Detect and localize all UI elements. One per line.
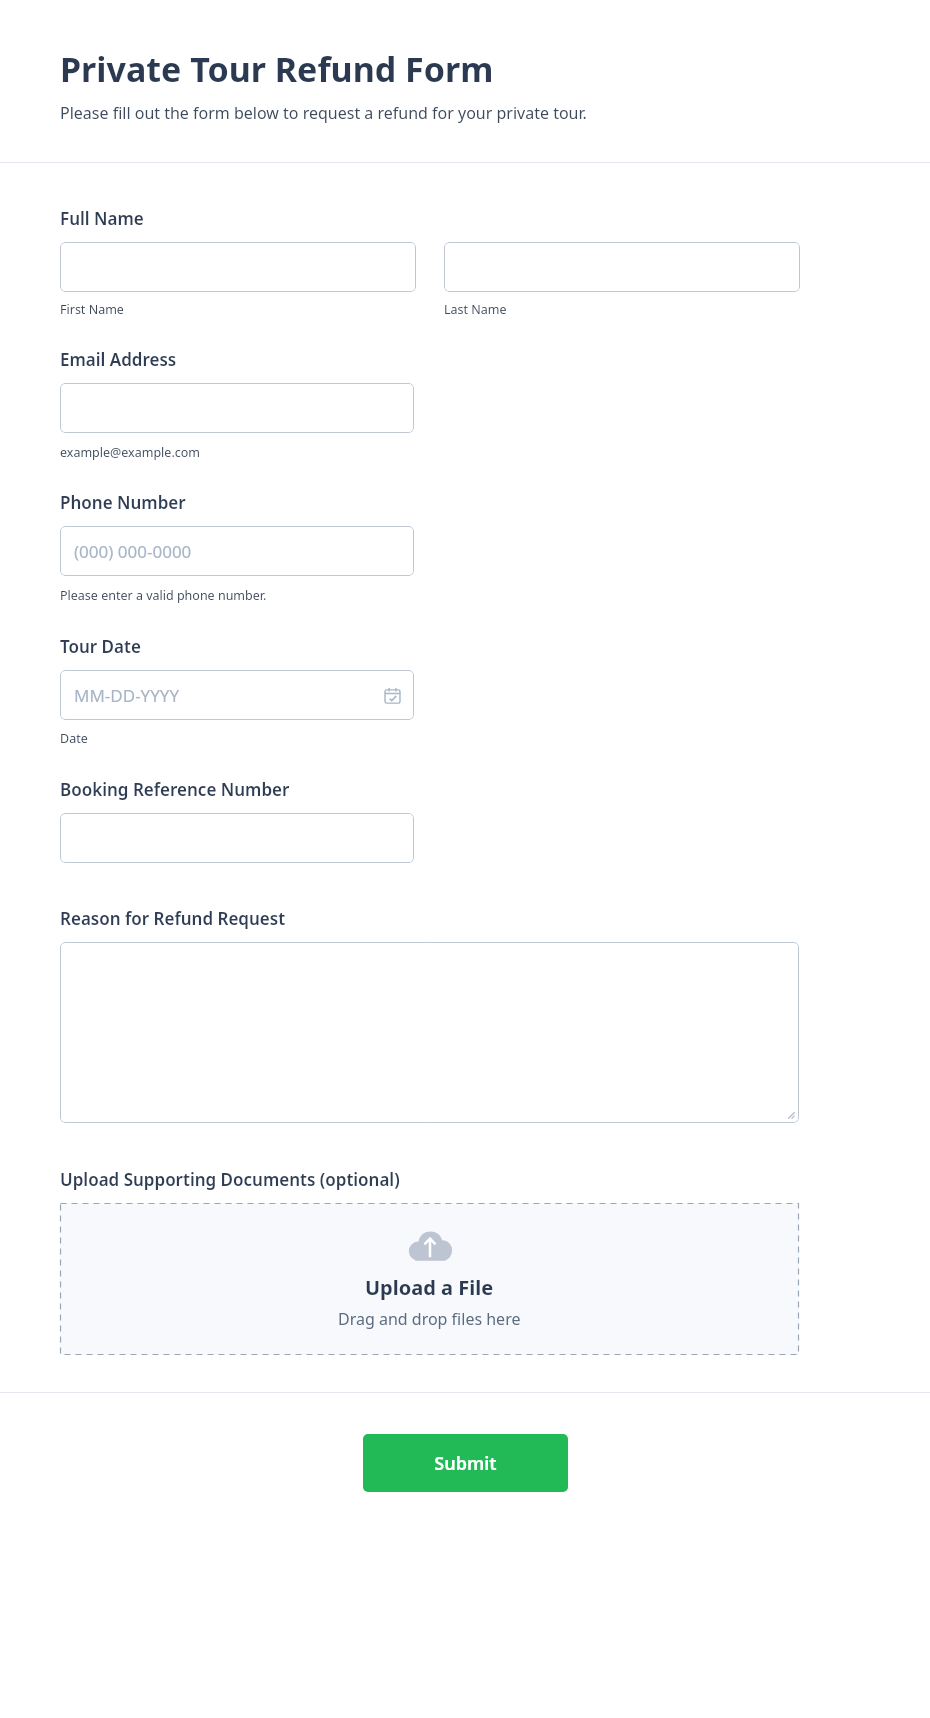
- staticText: Upload Supporting Documents (optional): [60, 1168, 400, 1191]
- staticText: Private Tour Refund Form: [60, 46, 494, 92]
- staticText: MM-DD-YYYY: [74, 684, 180, 707]
- staticText: Reason for Refund Request: [60, 907, 286, 930]
- staticText: Last Name: [444, 301, 507, 318]
- staticText: First Name: [60, 301, 124, 318]
- button[interactable]: [444, 242, 800, 292]
- button[interactable]: (000) 000-0000: [60, 526, 414, 576]
- staticText: Upload a File: [365, 1274, 494, 1301]
- staticText: Full Name: [60, 207, 144, 230]
- staticText: Tour Date: [60, 635, 141, 658]
- button[interactable]: MM-DD-YYYY: [60, 670, 414, 720]
- staticText: Booking Reference Number: [60, 778, 290, 801]
- staticText: Drag and drop files here: [338, 1308, 521, 1330]
- button[interactable]: [60, 242, 416, 292]
- staticText: Phone Number: [60, 491, 186, 514]
- staticText: Please fill out the form below to reques…: [60, 102, 587, 124]
- staticText: example@example.com: [60, 444, 200, 461]
- button[interactable]: Submit: [363, 1434, 568, 1492]
- button[interactable]: [60, 942, 799, 1123]
- button[interactable]: Upload a File: [60, 1203, 799, 1355]
- button[interactable]: [60, 813, 414, 863]
- staticText: Please enter a valid phone number.: [60, 587, 267, 604]
- staticText: Submit: [434, 1451, 497, 1476]
- staticText: (000) 000-0000: [74, 540, 192, 563]
- button[interactable]: [60, 383, 414, 433]
- staticText: Date: [60, 730, 88, 747]
- staticText: Email Address: [60, 348, 177, 371]
